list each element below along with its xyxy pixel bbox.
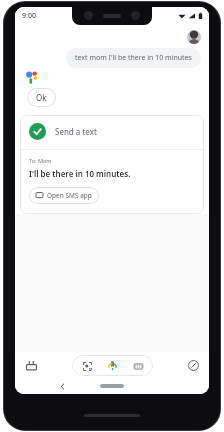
staticText: Send a text bbox=[55, 126, 97, 137]
staticText: 9:00 bbox=[22, 11, 36, 21]
button[interactable]: text mom I'll be there in 10 minutes bbox=[66, 48, 201, 68]
button[interactable]: Voice search bbox=[106, 359, 119, 372]
staticText: text mom I'll be there in 10 minutes bbox=[75, 53, 192, 63]
button[interactable]: Snapshot bbox=[23, 357, 39, 373]
button[interactable]: Open SMS app bbox=[29, 187, 99, 204]
button[interactable]: Send a text bbox=[20, 115, 204, 214]
staticText: Ok bbox=[36, 92, 47, 103]
button[interactable]: Explore bbox=[185, 357, 201, 373]
button[interactable]: Home bbox=[100, 384, 124, 388]
button[interactable]: Ok bbox=[27, 88, 56, 107]
button[interactable]: Google Lens bbox=[81, 360, 93, 372]
button[interactable]: Back bbox=[55, 379, 69, 393]
button[interactable]: Keyboard bbox=[132, 360, 144, 372]
staticText: To: Mom bbox=[29, 157, 52, 164]
button[interactable]: Account bbox=[187, 30, 201, 44]
staticText: I'll be there in 10 minutes. bbox=[29, 168, 131, 179]
staticText: Open SMS app bbox=[47, 191, 92, 200]
